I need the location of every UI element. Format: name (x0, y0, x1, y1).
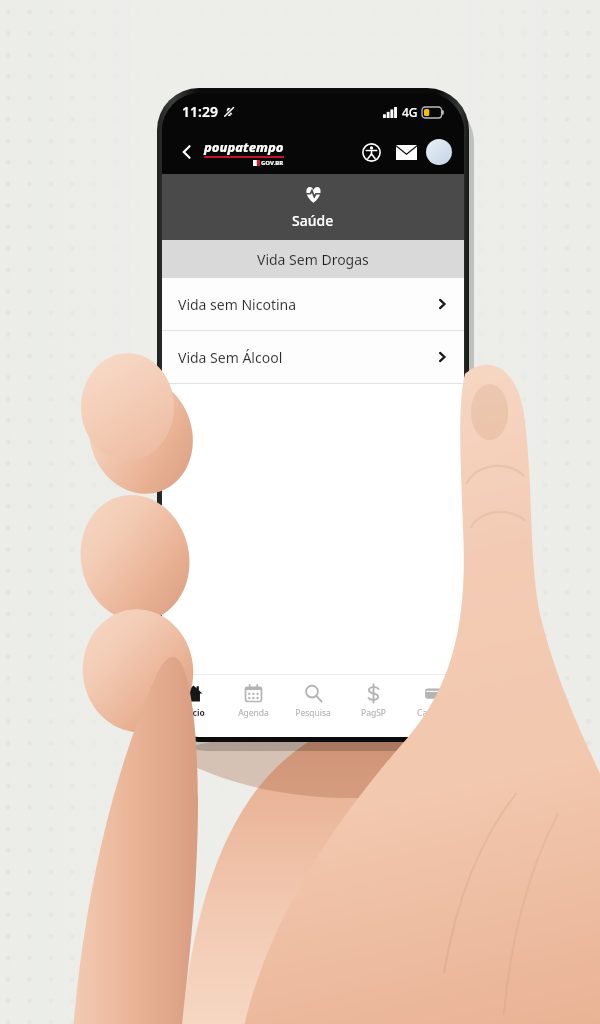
button[interactable]: Acessibilidade (357, 138, 385, 166)
button[interactable]: Agenda (224, 675, 282, 727)
button[interactable]: Início (164, 675, 222, 727)
staticText: Carteira (417, 707, 449, 719)
button[interactable]: Vida Sem Álcool (162, 331, 464, 383)
staticText: Pesquisa (295, 707, 331, 719)
staticText: PagSP (361, 707, 386, 719)
staticText: Agenda (238, 707, 269, 719)
staticText: Saúde (292, 211, 334, 230)
staticText: 4G (402, 104, 418, 120)
staticText: Vida Sem Álcool (178, 348, 436, 367)
button[interactable]: Voltar (172, 137, 202, 167)
button[interactable]: Mensagens (391, 137, 421, 167)
button[interactable]: Carteira (404, 675, 462, 727)
staticText: poupatempo (204, 138, 284, 156)
button[interactable]: PagSP (344, 675, 402, 727)
staticText: 11:29 (182, 102, 218, 121)
staticText: Vida sem Nicotina (178, 295, 436, 314)
button[interactable]: Pesquisa (284, 675, 342, 727)
staticText: Início (181, 707, 205, 719)
staticText: Vida Sem Drogas (257, 250, 369, 269)
button[interactable]: Vida sem Nicotina (162, 278, 464, 330)
button[interactable]: Perfil (426, 139, 452, 165)
staticText: GOV.BR (261, 159, 284, 167)
